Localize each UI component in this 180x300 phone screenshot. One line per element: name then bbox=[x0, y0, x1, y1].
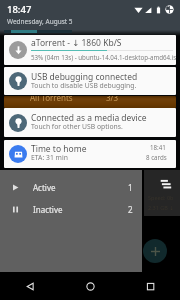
button[interactable]: USB debugging connected bbox=[4, 67, 176, 95]
staticText: 3/3 bbox=[106, 96, 119, 103]
staticText: 53% (04m 13s) - ubuntu-14.04.1-desktop-a… bbox=[31, 53, 176, 61]
button[interactable]: Sort bbox=[158, 176, 173, 191]
button[interactable]: Inactive bbox=[0, 198, 142, 220]
button[interactable]: Connected as a media device bbox=[4, 108, 176, 137]
staticText: 2 bbox=[128, 204, 133, 215]
staticText: All Torrents bbox=[30, 96, 73, 103]
staticText: aTorrent - ↓ 1860 Kb/S bbox=[31, 37, 122, 49]
staticText: Wednesday, August 5 bbox=[7, 17, 73, 26]
staticText: 1 bbox=[128, 182, 133, 193]
button[interactable]: Back bbox=[0, 272, 60, 300]
button[interactable]: Home bbox=[60, 272, 120, 300]
button[interactable]: Add torrent bbox=[143, 239, 167, 263]
staticText: 18:41 bbox=[150, 143, 166, 151]
staticText: Inactive bbox=[33, 204, 63, 215]
staticText: Active bbox=[33, 182, 56, 193]
button[interactable]: aTorrent - ↓ 1860 Kb/S bbox=[4, 35, 176, 65]
button[interactable]: Time to home bbox=[4, 140, 176, 168]
staticText: Touch for other USB options. bbox=[31, 122, 123, 131]
staticText: Touch to disable USB debugging. bbox=[31, 81, 137, 90]
staticText: USB debugging connected bbox=[31, 71, 138, 83]
staticText: 8 cards bbox=[146, 153, 167, 161]
button[interactable]: All Torrents bbox=[4, 96, 176, 108]
staticText: Connected as a media device bbox=[31, 112, 147, 124]
staticText: Time to home bbox=[31, 143, 87, 155]
staticText: Speed: 0b bbox=[148, 194, 174, 201]
staticText: ETA: 31 min bbox=[31, 153, 68, 162]
staticText: 18:47 bbox=[7, 3, 32, 16]
button[interactable]: Recents bbox=[120, 272, 180, 300]
button[interactable]: Active bbox=[0, 176, 142, 198]
